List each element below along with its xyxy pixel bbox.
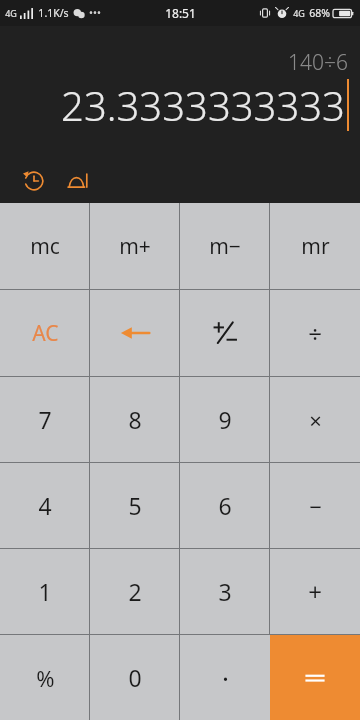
staticText: 5 — [128, 490, 142, 521]
staticText: 7 — [38, 404, 52, 435]
button[interactable]: Graph — [62, 165, 94, 197]
button[interactable]: m− — [180, 203, 270, 289]
button[interactable]: m+ — [90, 203, 180, 289]
button[interactable]: Equals — [270, 635, 360, 720]
staticText: m− — [209, 232, 241, 261]
staticText: − — [309, 491, 322, 521]
button[interactable]: % — [0, 635, 90, 720]
button[interactable]: 6 — [180, 463, 270, 548]
staticText: 0 — [128, 662, 142, 693]
button[interactable]: 1 — [0, 549, 90, 634]
staticText: ••• — [89, 6, 101, 20]
staticText: 18:51 — [165, 5, 196, 21]
button[interactable]: + — [270, 549, 360, 634]
staticText: 4G — [5, 7, 17, 19]
button[interactable]: 0 — [90, 635, 180, 720]
staticText: ÷ — [308, 317, 322, 350]
button[interactable]: Backspace — [90, 290, 180, 376]
button[interactable]: 9 — [180, 377, 270, 462]
staticText: + — [308, 575, 322, 608]
button[interactable]: 7 — [0, 377, 90, 462]
button[interactable]: 8 — [90, 377, 180, 462]
staticText: mr — [301, 232, 330, 261]
staticText: mc — [30, 232, 60, 261]
staticText: 2 — [128, 576, 142, 607]
button[interactable]: mr — [270, 203, 360, 289]
staticText: 1.1K/s — [38, 6, 69, 20]
staticText: 3 — [218, 576, 232, 607]
staticText: · — [222, 660, 229, 695]
staticText: 1 — [38, 576, 52, 607]
button[interactable]: 5 — [90, 463, 180, 548]
button[interactable]: − — [270, 463, 360, 548]
button[interactable]: 2 — [90, 549, 180, 634]
staticText: 140÷6 — [288, 48, 348, 77]
staticText: 6 — [218, 490, 232, 521]
button[interactable]: mc — [0, 203, 90, 289]
button[interactable]: AC — [0, 290, 90, 376]
button[interactable]: 3 — [180, 549, 270, 634]
staticText: 4G — [293, 7, 305, 19]
button[interactable]: 4 — [0, 463, 90, 548]
staticText: m+ — [119, 232, 151, 261]
button[interactable]: · — [180, 635, 270, 720]
staticText: % — [36, 663, 55, 693]
button[interactable]: × — [270, 377, 360, 462]
staticText: 8 — [128, 404, 142, 435]
staticText: 68% — [309, 6, 330, 20]
staticText: 9 — [218, 404, 232, 435]
staticText: 4 — [38, 490, 52, 521]
button[interactable]: History — [18, 165, 50, 197]
staticText: 23.3333333333 — [61, 78, 345, 132]
staticText: × — [309, 405, 322, 435]
button[interactable]: ÷ — [270, 290, 360, 376]
staticText: AC — [32, 319, 59, 348]
button[interactable]: Plus minus — [180, 290, 270, 376]
